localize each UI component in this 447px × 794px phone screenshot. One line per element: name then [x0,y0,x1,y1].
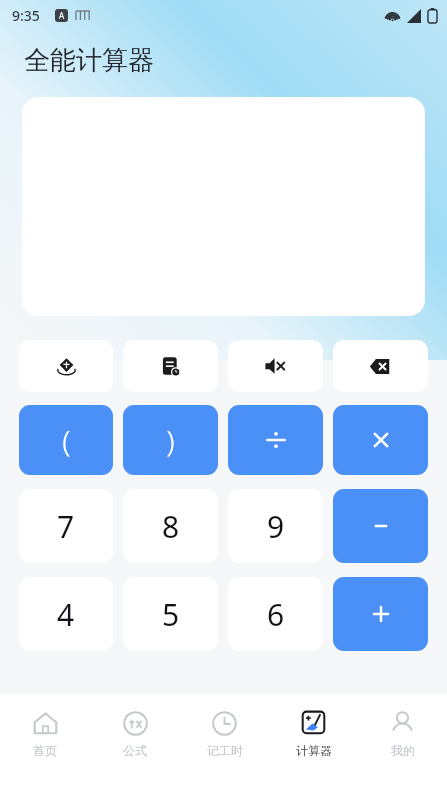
staticText: ) [166,420,175,461]
staticText: 6 [267,594,285,635]
button[interactable]: 5 [123,577,218,651]
staticText: 7 [57,506,75,547]
button[interactable]: ( [19,405,113,475]
staticText: 记工时 [207,743,243,758]
staticText: 8 [162,506,180,547]
staticText: ( [62,420,71,461]
staticText: 全能计算器 [24,44,154,77]
staticText: 9:35 [12,6,40,25]
staticText: 9 [267,506,285,547]
button[interactable]: 4 [19,577,113,651]
button[interactable]: Plus [333,577,428,651]
button[interactable]: Scientific mode [19,340,113,392]
button[interactable]: Divide [228,405,323,475]
button[interactable]: 9 [228,489,323,563]
button[interactable]: 7 [19,489,113,563]
button[interactable]: 公式 [90,694,180,794]
button[interactable]: Backspace [333,340,428,392]
button[interactable]: 记工时 [180,694,269,794]
button[interactable]: 首页 [0,694,90,794]
staticText: 公式 [123,743,147,758]
staticText: 5 [162,594,180,635]
staticText: 4 [57,594,75,635]
button[interactable]: 8 [123,489,218,563]
button[interactable]: 我的 [358,694,447,794]
button[interactable]: Mute [228,340,323,392]
button[interactable]: 6 [228,577,323,651]
button[interactable]: ) [123,405,218,475]
button[interactable]: History [123,340,218,392]
staticText: 我的 [391,743,415,758]
staticText: A [59,10,65,21]
button[interactable]: Multiply [333,405,428,475]
button[interactable]: 计算器 [269,694,358,794]
staticText: 计算器 [296,743,332,758]
staticText: 首页 [33,743,57,758]
button[interactable]: Minus [333,489,428,563]
